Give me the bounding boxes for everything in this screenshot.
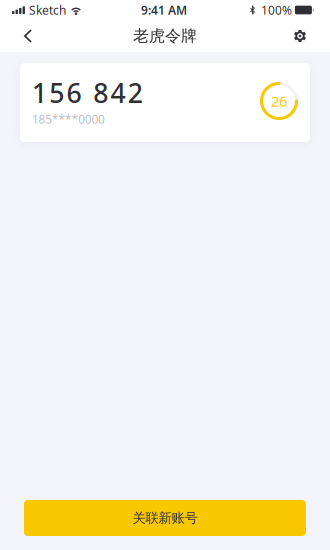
staticText: 26 — [271, 91, 287, 111]
staticText: Sketch — [29, 2, 66, 18]
button[interactable]: Back — [6, 20, 50, 52]
staticText: 9:41 AM — [141, 2, 187, 18]
staticText: 185****0000 — [32, 111, 105, 127]
staticText: 100% — [261, 2, 292, 18]
staticText: 156 842 — [32, 75, 143, 110]
button[interactable]: 关联新账号 — [24, 500, 306, 536]
button[interactable]: Settings — [278, 20, 322, 52]
staticText: 关联新账号 — [132, 510, 197, 526]
staticText: 老虎令牌 — [133, 26, 197, 46]
